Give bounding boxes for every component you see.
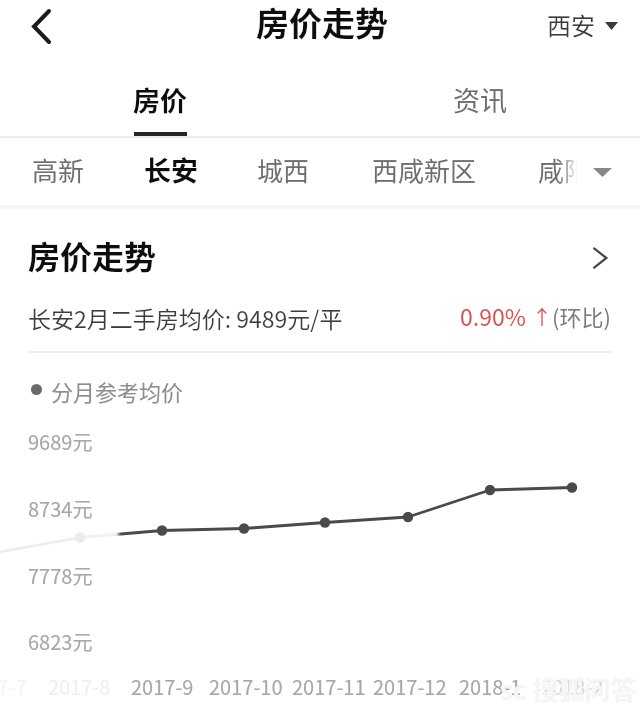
button[interactable]: 城西 [245,138,322,207]
staticText: 长安 [144,150,198,189]
staticText: 房价走势 [256,0,388,46]
staticText: 2018-1 [459,672,522,701]
button[interactable]: 西咸新区 [360,138,489,207]
staticText: 西安 [547,7,595,42]
button[interactable]: 高新 [20,138,97,207]
staticText: 房价走势 [28,232,157,278]
staticText: sc 搜狐问答 [500,670,637,708]
button[interactable]: Back [6,0,76,52]
staticText: 分月参考均价 [51,375,184,407]
staticText: 西咸新区 [372,151,477,189]
staticText: 7778元 [28,561,93,590]
staticText: 2017-11 [292,672,366,701]
button[interactable]: More districts [580,152,622,192]
staticText: ↑ [532,302,552,331]
staticText: 8734元 [28,494,93,523]
staticText: 城西 [257,151,310,189]
button[interactable]: 房价走势 [0,212,640,287]
staticText: 高新 [32,151,85,189]
staticText: 6823元 [28,627,93,656]
staticText: 2017-7 [0,672,27,701]
staticText: 长安2月二手房均价: 9489元/平 [28,301,343,334]
button[interactable]: 房价 [80,66,240,128]
staticText: 0.90% [460,299,526,332]
button[interactable]: 西安 [536,0,632,48]
button[interactable]: 咸阳 [526,138,603,207]
staticText: 2017-10 [209,672,283,701]
staticText: 2017-8 [48,672,111,701]
staticText: 房价 [133,80,187,119]
staticText: (环比) [552,300,611,332]
staticText: 咸阳 [538,151,591,189]
button[interactable]: 长安 [132,138,210,207]
button[interactable]: 资讯 [400,66,560,128]
staticText: 资讯 [453,80,507,119]
staticText: 9689元 [28,427,93,456]
staticText: 2017-9 [131,672,194,701]
staticText: 2017-12 [373,672,447,701]
staticText: 2018-2 [541,672,604,701]
